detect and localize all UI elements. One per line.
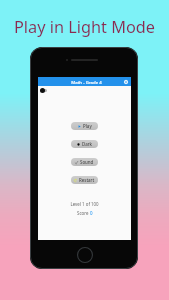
button[interactable]: Sound — [71, 158, 98, 166]
button[interactable]: Home — [77, 247, 93, 263]
button[interactable]: Settings — [123, 79, 128, 84]
staticText: Restart — [79, 177, 95, 183]
button[interactable]: Toggle dark mode — [39, 87, 50, 93]
staticText: Math - Grade 4 — [40, 79, 133, 85]
button[interactable]: Math - Grade 4 — [38, 77, 131, 86]
staticText: Dark — [82, 141, 93, 147]
staticText: Play in Light Mode — [0, 16, 169, 38]
staticText: Sound — [80, 159, 94, 165]
staticText: Level 1 of 100 — [38, 201, 131, 207]
staticText: Play — [83, 123, 92, 129]
button[interactable]: Dark — [71, 140, 98, 148]
staticText: Score — [77, 210, 90, 216]
staticText: 0 — [90, 210, 93, 216]
button[interactable]: Play — [71, 122, 98, 130]
button[interactable]: Restart — [71, 176, 98, 184]
